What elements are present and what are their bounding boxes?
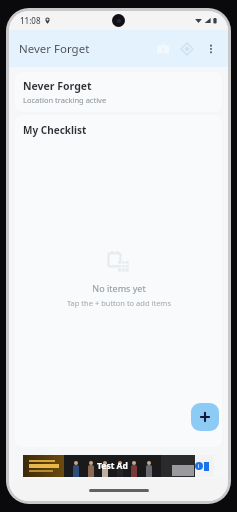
button[interactable]: More options [199,37,223,61]
staticText: Never Forget [23,79,92,93]
staticText: Tap the + button to add items [67,298,171,308]
button[interactable]: Add item [191,403,219,431]
staticText: No items yet [92,282,146,294]
button[interactable]: Never Forget [15,72,222,112]
button[interactable]: Advertisement [23,455,214,477]
staticText: Never Forget [19,41,90,57]
button[interactable]: Guide [151,37,175,61]
staticText: Test Ad [97,460,128,472]
staticText: Location tracking active [23,95,107,105]
button[interactable]: Location [175,37,199,61]
staticText: 11:08 [20,15,41,26]
staticText: i [198,463,200,470]
staticText: My Checklist [23,123,87,137]
